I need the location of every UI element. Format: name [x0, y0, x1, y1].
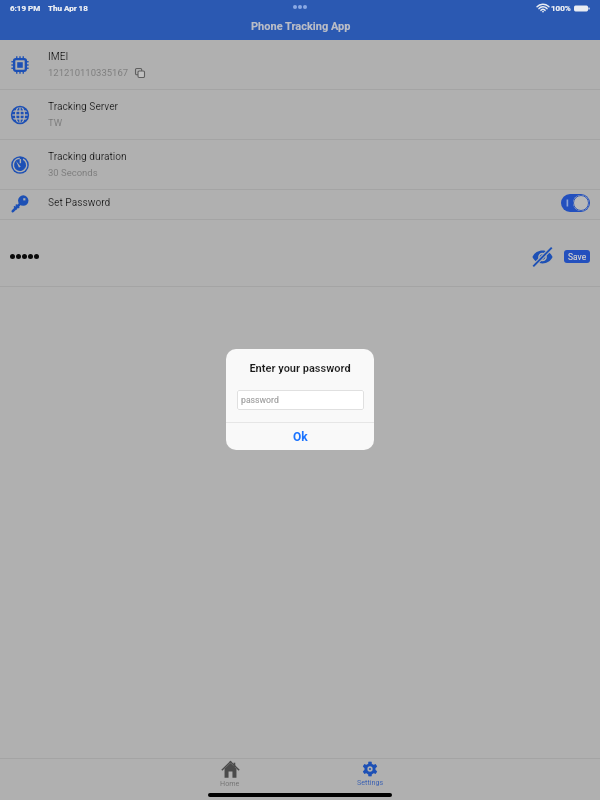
staticText: 30 Seconds [48, 167, 98, 178]
staticText: Tracking duration [48, 151, 127, 163]
button[interactable]: Set Password [0, 190, 600, 219]
button[interactable]: Settings [345, 759, 395, 786]
button[interactable]: Set password switch [561, 194, 590, 212]
button[interactable]: Tracking duration [0, 140, 600, 189]
staticText: 121210110335167 [48, 67, 129, 78]
staticText: Enter your password [226, 362, 374, 375]
button[interactable]: Home [205, 759, 255, 787]
staticText: 6:19 PM [10, 4, 41, 13]
button[interactable]: Show password [531, 246, 553, 268]
staticText: Home [220, 779, 240, 787]
staticText: Tracking Server [48, 101, 119, 113]
staticText: TW [48, 117, 63, 128]
button[interactable]: IMEI [0, 40, 600, 89]
staticText: Set Password [48, 197, 111, 209]
staticText: password [241, 395, 279, 405]
staticText: IMEI [48, 51, 69, 63]
button[interactable]: Save [564, 250, 590, 263]
staticText: 100% [551, 4, 571, 13]
staticText: Settings [357, 778, 384, 786]
button[interactable]: Ok [226, 423, 374, 450]
staticText: Save [568, 252, 587, 262]
staticText: Thu Apr 18 [48, 4, 88, 13]
staticText: Ok [293, 430, 308, 444]
staticText: Phone Tracking App [251, 20, 351, 33]
button[interactable]: Tracking Server [0, 90, 600, 139]
button[interactable]: Copy IMEI [135, 68, 145, 78]
